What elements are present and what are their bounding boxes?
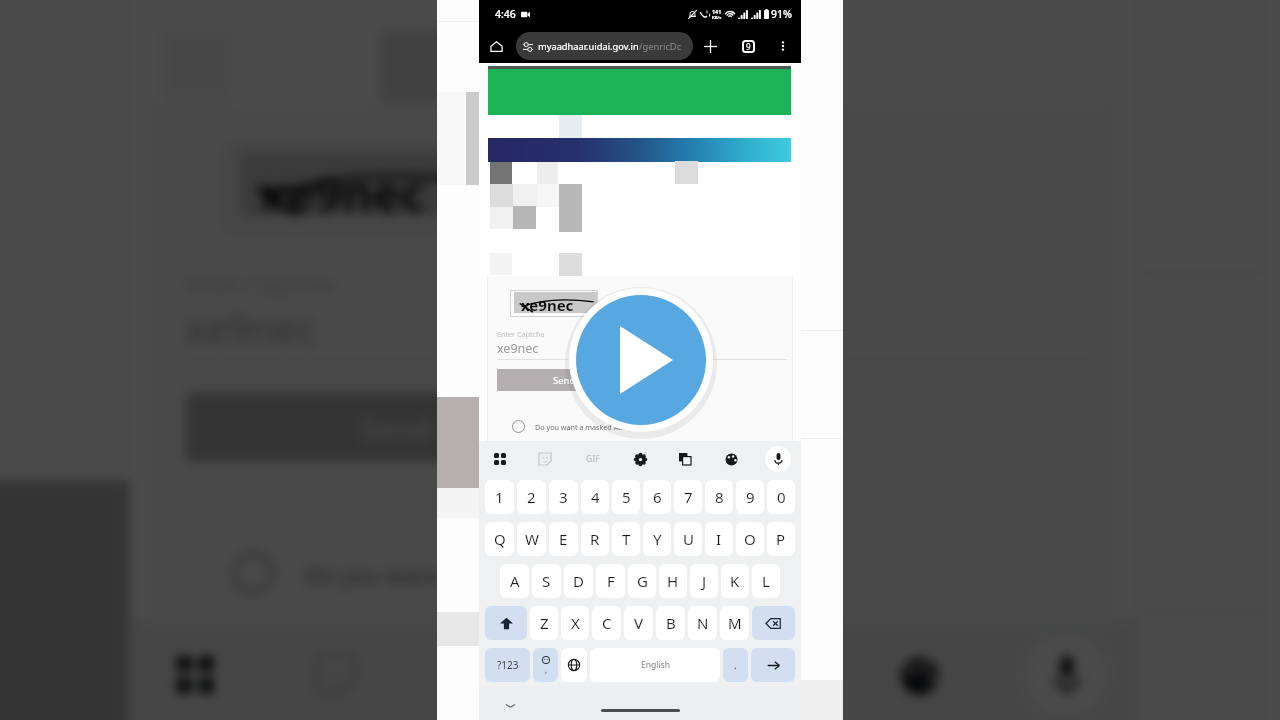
button[interactable]: J xyxy=(690,564,718,598)
button[interactable]: P xyxy=(767,522,795,556)
button[interactable]: Q xyxy=(485,522,514,556)
button[interactable]: K xyxy=(721,564,749,598)
button[interactable]: 9 xyxy=(736,480,764,514)
staticText: Send OTP xyxy=(553,374,596,387)
button[interactable]: Z xyxy=(530,606,558,640)
button[interactable]: Send OTP xyxy=(497,369,651,391)
staticText: 141 xyxy=(712,8,722,15)
button[interactable]: Home xyxy=(485,35,507,57)
button[interactable]: Translate xyxy=(740,640,809,709)
staticText: G xyxy=(637,571,648,591)
button[interactable]: E xyxy=(549,522,578,556)
button[interactable]: GIF xyxy=(580,448,606,470)
button[interactable]: H xyxy=(659,564,687,598)
staticText: U xyxy=(683,529,694,549)
button[interactable]: S xyxy=(532,564,561,598)
staticText: K xyxy=(730,571,740,591)
button[interactable]: U xyxy=(674,522,702,556)
button[interactable]: Play xyxy=(565,284,717,436)
button[interactable]: 4 xyxy=(581,480,609,514)
button[interactable]: A xyxy=(500,564,529,598)
staticText: xe9nec xyxy=(261,161,427,224)
staticText: 4:46 xyxy=(495,7,516,21)
button[interactable]: Tabs xyxy=(738,36,758,56)
staticText: 9 xyxy=(746,41,751,52)
staticText: F xyxy=(607,571,615,591)
button[interactable]: Stickers xyxy=(534,448,556,470)
button[interactable]: Y xyxy=(643,522,671,556)
button[interactable]: L xyxy=(752,564,780,598)
staticText: xe9nec xyxy=(497,340,539,357)
button[interactable]: C xyxy=(592,606,621,640)
staticText: B xyxy=(666,613,676,633)
button[interactable]: Apps xyxy=(161,640,230,709)
staticText: Enter Captcha xyxy=(497,329,545,339)
button[interactable]: Switch language xyxy=(561,648,587,682)
button[interactable]: Emoji xyxy=(533,648,558,682)
button[interactable]: 8 xyxy=(705,480,733,514)
button[interactable]: GIF xyxy=(446,640,527,709)
button[interactable]: 2 xyxy=(517,480,546,514)
staticText: V xyxy=(634,613,644,633)
staticText: English xyxy=(641,659,670,671)
button[interactable]: B xyxy=(656,606,685,640)
button[interactable]: Themes xyxy=(884,640,953,709)
button[interactable]: Themes xyxy=(720,448,742,470)
button[interactable]: 5 xyxy=(612,480,640,514)
button[interactable]: 6 xyxy=(643,480,671,514)
staticText: . xyxy=(734,658,737,672)
button[interactable]: N xyxy=(688,606,717,640)
button[interactable]: T xyxy=(612,522,640,556)
staticText: H xyxy=(667,571,679,591)
button[interactable]: 7 xyxy=(674,480,702,514)
button[interactable]: Settings xyxy=(599,640,668,709)
staticText: KB/s xyxy=(712,15,722,21)
button[interactable]: F xyxy=(596,564,625,598)
button[interactable]: R xyxy=(581,522,609,556)
staticText: xe9nec xyxy=(186,302,317,355)
button[interactable]: X xyxy=(561,606,589,640)
button[interactable]: M xyxy=(720,606,749,640)
button[interactable]: W xyxy=(517,522,546,556)
staticText: Send OTP xyxy=(361,409,496,449)
staticText: M xyxy=(728,613,742,633)
button[interactable]: English xyxy=(590,648,720,682)
staticText: ?123 xyxy=(497,658,519,672)
button[interactable]: Voice input xyxy=(765,446,791,472)
button[interactable]: O xyxy=(736,522,764,556)
button[interactable]: myaadhaar.uidai.gov.in xyxy=(516,32,693,60)
staticText: Z xyxy=(540,613,549,633)
staticText: /genricDc xyxy=(639,40,682,53)
button[interactable]: Backspace xyxy=(752,606,795,640)
button[interactable]: G xyxy=(628,564,656,598)
staticText: 2 xyxy=(527,487,536,507)
button[interactable]: 1 xyxy=(485,480,514,514)
button[interactable]: More options xyxy=(774,37,792,55)
button[interactable]: Enter xyxy=(751,648,795,682)
button[interactable]: ?123 xyxy=(485,648,530,682)
button[interactable]: V xyxy=(624,606,653,640)
button[interactable]: Settings xyxy=(629,448,651,470)
staticText: T xyxy=(622,529,631,549)
button[interactable]: Shift xyxy=(485,606,527,640)
button[interactable]: I xyxy=(705,522,733,556)
button[interactable]: Translate xyxy=(674,448,696,470)
button[interactable]: New tab xyxy=(700,36,720,56)
button[interactable]: . xyxy=(723,648,748,682)
staticText: L xyxy=(762,571,770,591)
staticText: 5 xyxy=(622,487,631,507)
staticText: X xyxy=(571,613,580,633)
button[interactable]: Hide keyboard xyxy=(502,697,518,713)
button[interactable]: D xyxy=(564,564,593,598)
button[interactable]: Send OTP xyxy=(186,393,668,462)
staticText: W xyxy=(525,529,539,549)
staticText: C xyxy=(602,613,612,633)
button[interactable]: Apps xyxy=(489,448,511,470)
staticText: 1 xyxy=(495,487,504,507)
button[interactable]: 3 xyxy=(549,480,578,514)
button[interactable]: Voice input xyxy=(1025,634,1106,715)
staticText: 91% xyxy=(771,7,792,21)
button[interactable]: 0 xyxy=(767,480,795,514)
